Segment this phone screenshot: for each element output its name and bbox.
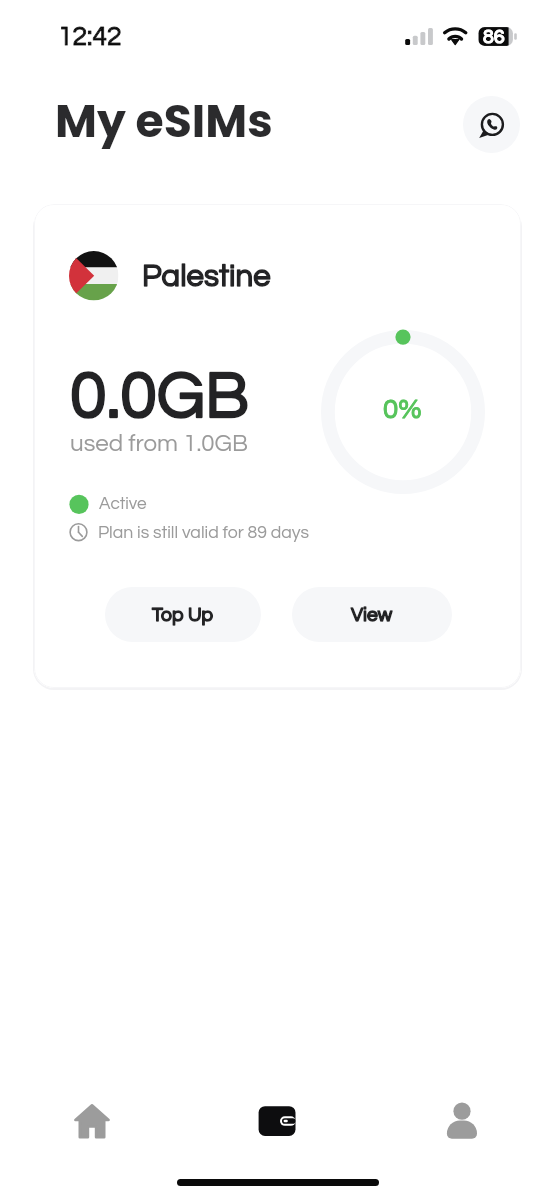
staticText: Top Up (152, 605, 214, 625)
staticText: View (351, 605, 393, 625)
staticText: 0% (383, 395, 422, 423)
staticText: Plan is still valid for 89 days (98, 523, 310, 541)
staticText: Palestine (142, 260, 271, 292)
staticText: Palestine (142, 260, 271, 292)
staticText: 86 (483, 27, 505, 47)
staticText: View (351, 605, 393, 625)
staticText: used from 1.0GB (70, 431, 248, 456)
button[interactable]: Home (0, 1092, 184, 1149)
staticText: My eSIMs (55, 89, 273, 153)
staticText: 0.0GB (70, 362, 250, 431)
button[interactable]: Palestine (34, 204, 521, 688)
staticText: Active (99, 495, 147, 513)
button[interactable]: WhatsApp support (463, 96, 520, 153)
staticText: 86 (483, 27, 505, 47)
button[interactable]: My eSIMs (184, 1092, 369, 1149)
staticText: 0.0GB (70, 362, 250, 431)
button[interactable]: Top Up (105, 587, 261, 642)
staticText: 0% (383, 395, 422, 423)
staticText: 12:42 (58, 23, 122, 50)
button[interactable]: Profile (369, 1092, 554, 1149)
button[interactable]: View (292, 587, 452, 642)
staticText: 12:42 (58, 23, 122, 50)
staticText: Top Up (152, 605, 214, 625)
